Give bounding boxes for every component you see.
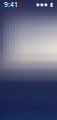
staticText: ▪▪▪ ▮: [36, 1, 53, 8]
staticText: 9:41: [4, 0, 18, 9]
